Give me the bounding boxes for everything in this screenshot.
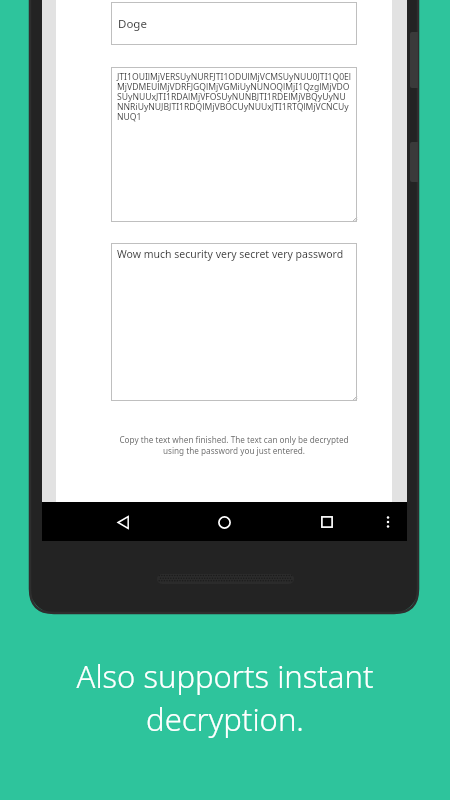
button[interactable]: Home [210, 508, 238, 536]
staticText: JTI1OUIlMjVERSUyNURFJTI1ODUlMjVCMSUyNUU0… [117, 71, 352, 123]
button[interactable]: JTI1OUIlMjVERSUyNURFJTI1ODUlMjVCMSUyNUU0… [111, 67, 357, 222]
button[interactable]: More options [374, 508, 402, 536]
button[interactable]: Doge [111, 2, 357, 45]
staticText: Copy the text when finished. The text ca… [111, 434, 357, 456]
staticText: Also supports instant decryption. [0, 655, 450, 740]
staticText: Doge [118, 16, 147, 32]
button[interactable]: Recent apps [313, 508, 341, 536]
button[interactable]: Back [109, 508, 137, 536]
staticText: Wow much security very secret very passw… [117, 247, 349, 261]
button[interactable]: Wow much security very secret very passw… [111, 243, 357, 401]
